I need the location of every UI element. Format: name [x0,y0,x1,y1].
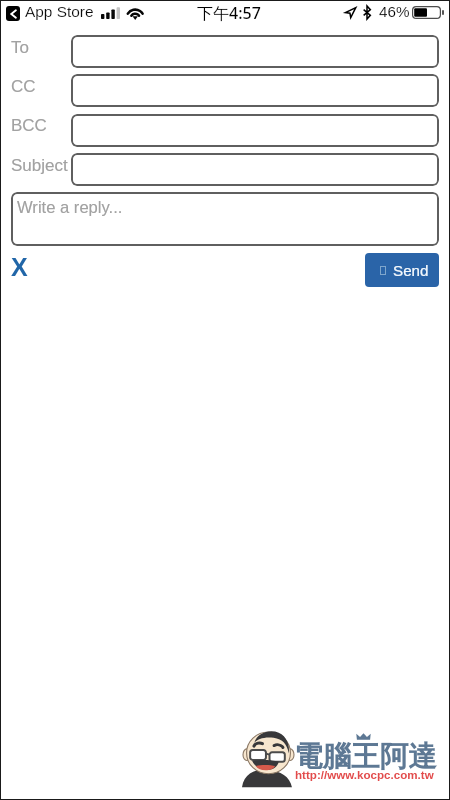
staticText: 46% [379,3,410,20]
staticText: http://www.kocpc.com.tw [295,768,434,781]
staticText: Subject [11,156,68,175]
staticText: App Store [25,3,94,20]
button[interactable] [71,153,439,186]
staticText: To [11,38,29,57]
button[interactable] [71,35,439,68]
button[interactable]: X [11,253,28,281]
button[interactable]: Send [365,253,439,287]
staticText: 電腦王阿達 [294,739,437,775]
button[interactable] [71,74,439,107]
staticText: 下午4:57 [197,2,261,24]
staticText: Write a reply... [17,198,123,217]
button[interactable]: Back to App Store [6,6,20,21]
staticText: X [11,253,28,281]
staticText: Send [393,262,429,279]
button[interactable]: Write a reply... [11,192,439,246]
staticText: BCC [11,116,47,135]
button[interactable] [71,114,439,147]
staticText: CC [11,77,36,96]
